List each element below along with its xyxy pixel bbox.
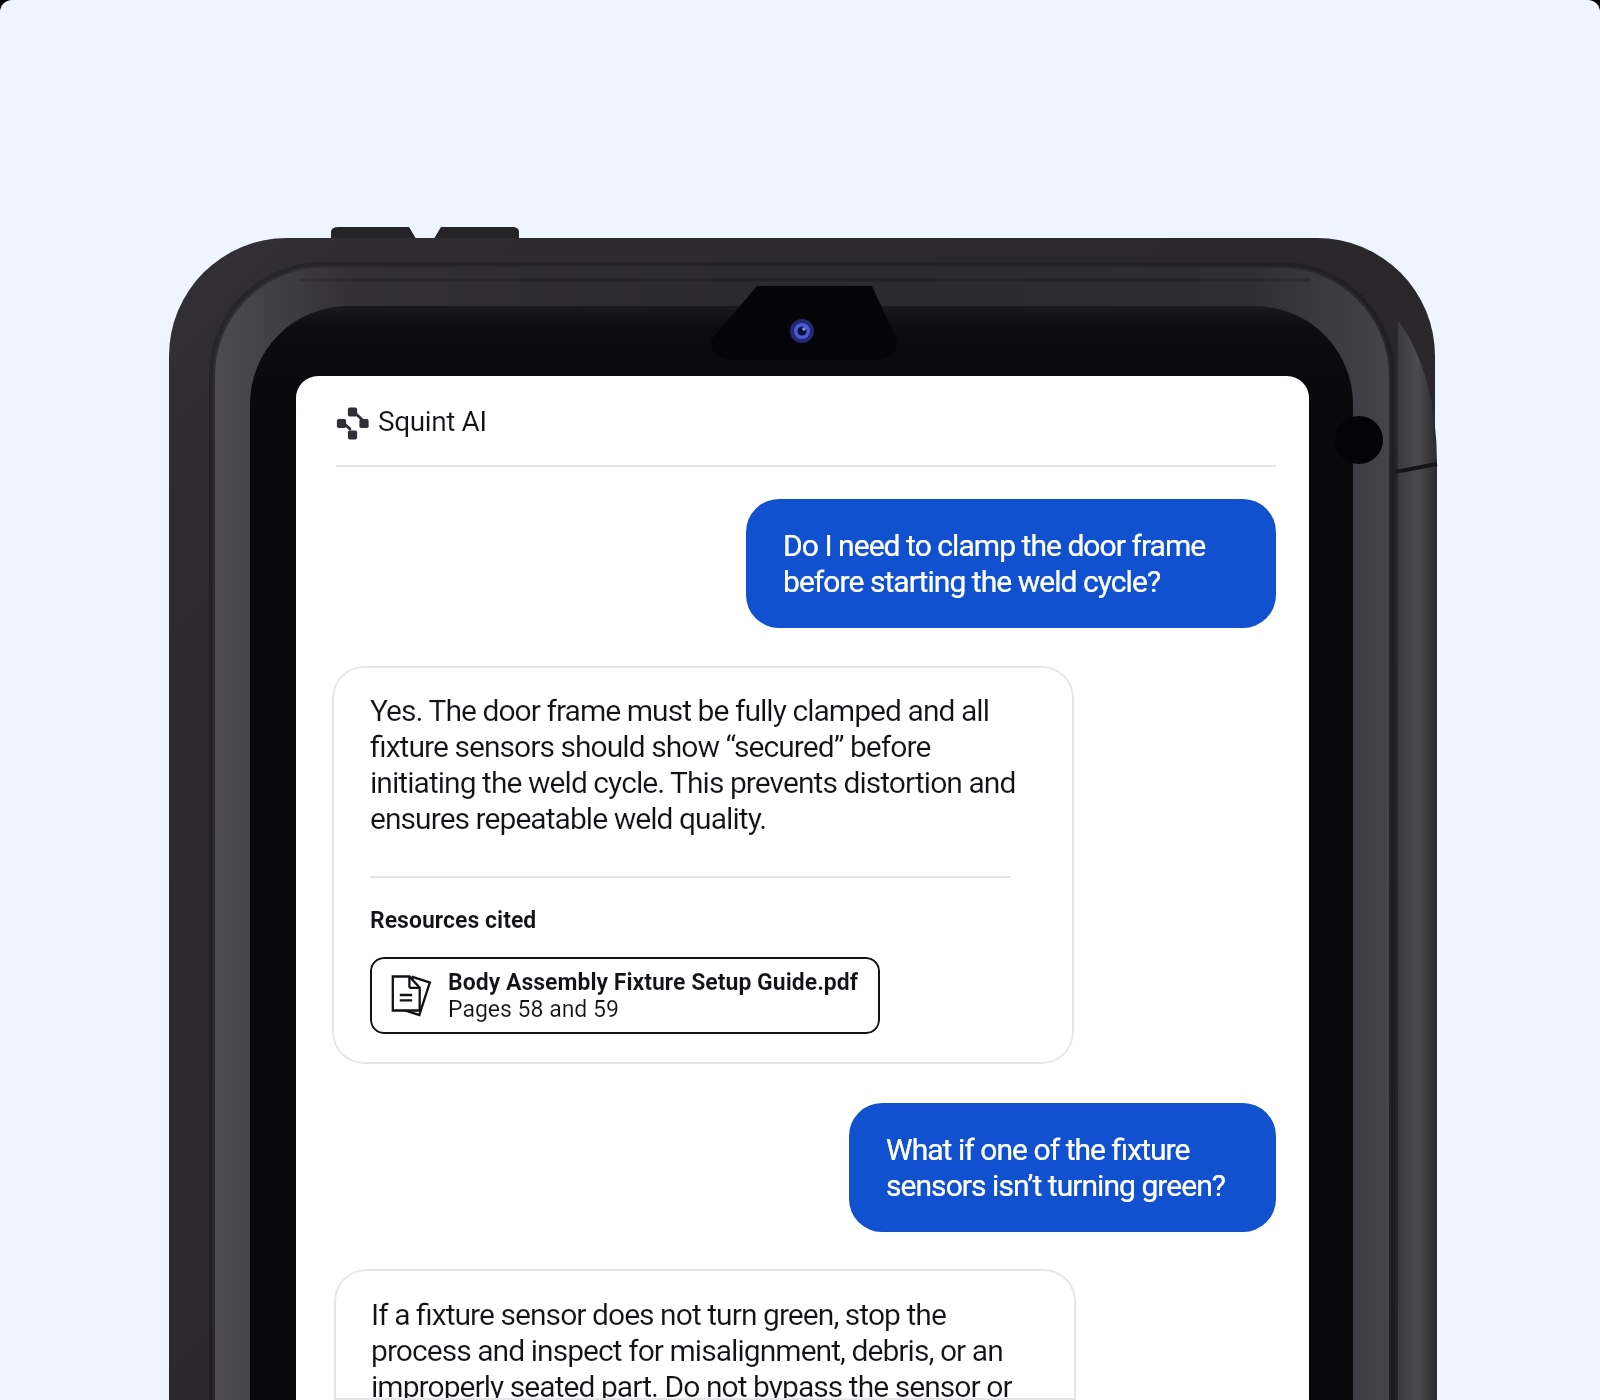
button[interactable]: What if one of the fixture sensors isn’t…: [849, 1103, 1276, 1232]
staticText: If a fixture sensor does not turn green,…: [371, 1297, 1012, 1400]
button[interactable]: Body Assembly Fixture Setup Guide.pdf: [370, 957, 880, 1034]
staticText: Resources cited: [370, 907, 537, 934]
staticText: Do I need to clamp the door frame before…: [783, 528, 1206, 599]
staticText: Body Assembly Fixture Setup Guide.pdf: [448, 969, 859, 996]
staticText: Yes. The door frame must be fully clampe…: [370, 693, 1016, 836]
staticText: Pages 58 and 59: [448, 996, 619, 1023]
button[interactable]: Do I need to clamp the door frame before…: [746, 499, 1276, 628]
button[interactable]: Squint AI home: [334, 403, 487, 439]
staticText: What if one of the fixture sensors isn’t…: [886, 1132, 1226, 1203]
staticText: Squint AI: [378, 405, 487, 438]
